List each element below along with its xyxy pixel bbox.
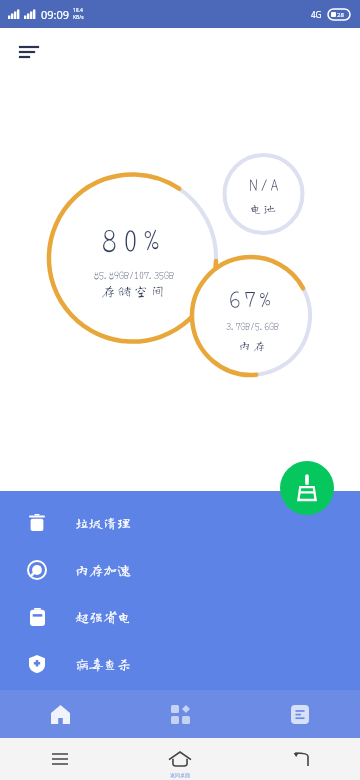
staticText: KB/s xyxy=(73,14,84,21)
button[interactable]: 超强省电 xyxy=(0,593,360,640)
staticText: 4G xyxy=(311,9,322,20)
staticText: 80% xyxy=(102,217,165,257)
button[interactable]: Clean xyxy=(280,461,334,515)
staticText: 内存加速 xyxy=(75,563,131,577)
button[interactable]: Home xyxy=(120,738,240,780)
staticText: 内存 xyxy=(238,339,268,351)
button[interactable]: Menu xyxy=(14,37,44,67)
button[interactable]: Apps xyxy=(120,690,240,738)
staticText: 病毒查杀 xyxy=(75,657,131,671)
staticText: 67% xyxy=(229,282,275,314)
button[interactable]: 内存加速 xyxy=(0,546,360,593)
staticText: 返回桌面 xyxy=(170,772,190,778)
staticText: 垃圾清理 xyxy=(75,516,131,530)
staticText: 超强省电 xyxy=(75,610,131,624)
button[interactable]: News xyxy=(240,690,360,738)
staticText: N/A xyxy=(249,171,281,196)
staticText: 3.7GB/5.6GB xyxy=(226,319,279,333)
button[interactable]: Back xyxy=(240,738,360,780)
staticText: 18.4 xyxy=(73,7,83,14)
staticText: 09:09 xyxy=(41,7,70,22)
button[interactable]: Home xyxy=(0,690,120,738)
staticText: 85.89GB/107.35GB xyxy=(94,267,174,281)
button[interactable]: 垃圾清理 xyxy=(0,499,360,546)
staticText: 存储空间 xyxy=(101,284,167,298)
staticText: 电池 xyxy=(249,202,279,214)
button[interactable]: Recents xyxy=(0,738,120,780)
button[interactable]: 病毒查杀 xyxy=(0,640,360,687)
staticText: 28 xyxy=(337,11,344,19)
